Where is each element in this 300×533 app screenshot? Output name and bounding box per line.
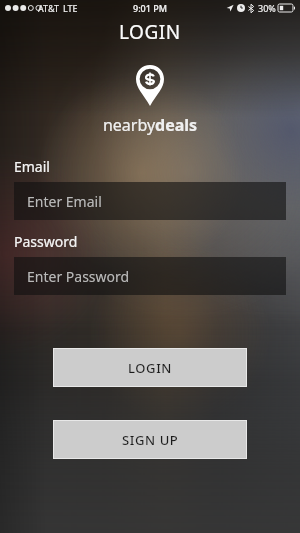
staticText: nearbydeals	[0, 114, 300, 136]
staticText: LOGIN	[128, 359, 173, 377]
staticText: 30%	[258, 2, 276, 14]
staticText: 9:01 PM	[133, 2, 167, 14]
staticText: Email	[14, 157, 50, 176]
button[interactable]: Enter Email	[14, 182, 286, 220]
button[interactable]: SIGN UP	[54, 421, 246, 458]
button[interactable]: Enter Password	[14, 257, 286, 295]
staticText: Enter Email	[27, 192, 102, 211]
staticText: Enter Password	[27, 267, 130, 286]
staticText: Password	[14, 232, 78, 251]
staticText: SIGN UP	[122, 431, 179, 449]
staticText: LTE	[63, 2, 78, 14]
button[interactable]: LOGIN	[54, 349, 246, 386]
staticText: LOGIN	[119, 19, 181, 45]
staticText: AT&T	[38, 2, 59, 14]
